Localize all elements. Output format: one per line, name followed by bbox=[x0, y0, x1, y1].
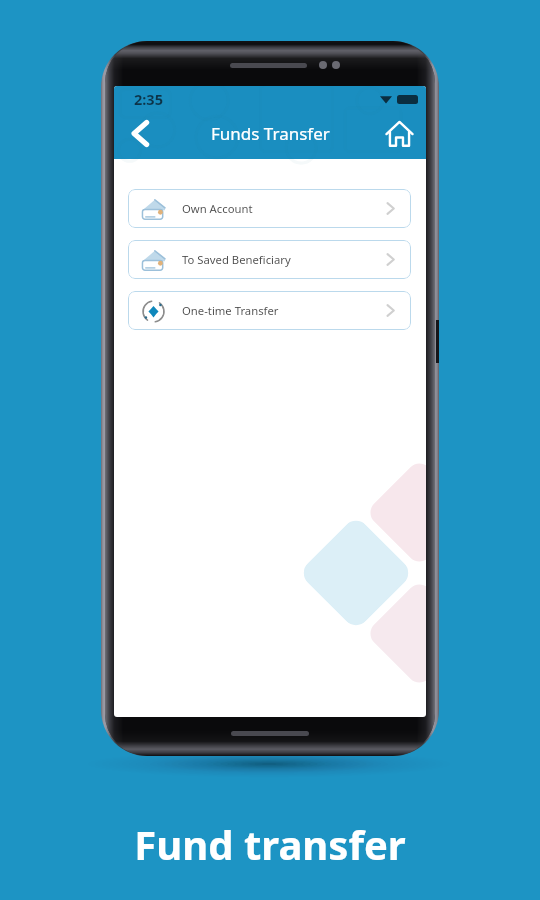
button[interactable]: Own Account bbox=[128, 189, 411, 228]
staticText: Funds Transfer bbox=[211, 122, 330, 145]
staticText: One-time Transfer bbox=[182, 303, 279, 318]
staticText: 2:35 bbox=[134, 89, 163, 109]
staticText: Fund transfer bbox=[134, 817, 406, 871]
button[interactable]: To Saved Beneficiary bbox=[128, 240, 411, 279]
staticText: Own Account bbox=[182, 201, 253, 216]
button[interactable]: Back bbox=[120, 114, 158, 152]
button[interactable]: Home bbox=[380, 114, 418, 152]
button[interactable]: One-time Transfer bbox=[128, 291, 411, 330]
staticText: To Saved Beneficiary bbox=[182, 252, 291, 267]
